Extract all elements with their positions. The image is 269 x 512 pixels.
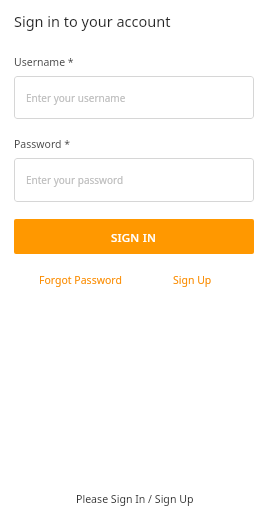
- staticText: Please Sign In / Sign Up: [76, 492, 194, 506]
- staticText: Enter your password: [26, 173, 124, 187]
- staticText: Sign in to your account: [14, 11, 171, 31]
- staticText: Sign Up: [173, 273, 212, 287]
- button[interactable]: SIGN IN: [14, 219, 254, 254]
- button[interactable]: Sign Up: [173, 273, 212, 287]
- staticText: Password *: [14, 137, 71, 151]
- staticText: Enter your username: [26, 91, 126, 105]
- button[interactable]: Enter your password: [14, 158, 254, 202]
- button[interactable]: Enter your username: [14, 76, 254, 119]
- button[interactable]: Forgot Password: [39, 273, 122, 287]
- staticText: Username *: [14, 55, 74, 69]
- staticText: SIGN IN: [111, 230, 157, 246]
- staticText: Forgot Password: [39, 273, 122, 287]
